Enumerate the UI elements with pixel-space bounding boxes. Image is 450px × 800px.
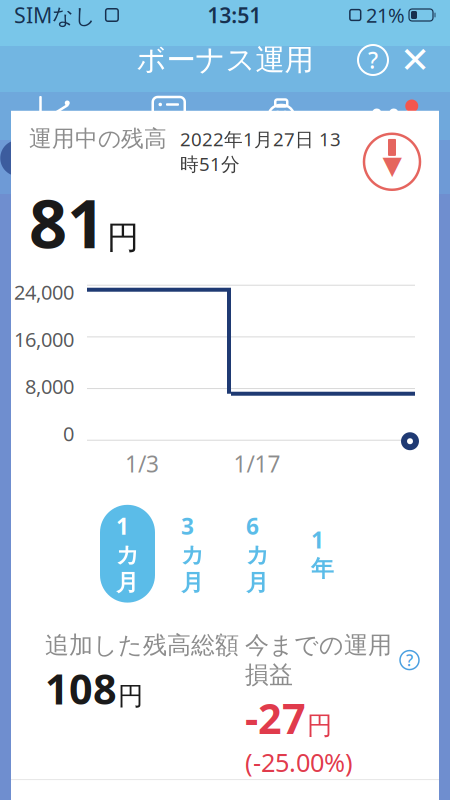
staticText: ✕ xyxy=(400,40,430,80)
button[interactable]: 閉じる xyxy=(394,39,436,81)
staticText: (-25.00%) xyxy=(245,745,353,779)
staticText: 1/3 xyxy=(125,449,159,479)
staticText: その他 xyxy=(361,145,426,171)
staticText: 108 xyxy=(45,661,117,716)
staticText: 円 xyxy=(307,710,332,741)
staticText: ? xyxy=(368,45,378,75)
staticText: ? xyxy=(406,649,413,671)
staticText: 2022年1月27日 13時51分 xyxy=(180,127,341,176)
staticText: ▼ xyxy=(382,151,401,180)
button[interactable]: 1年 xyxy=(290,519,355,589)
staticText: ¥ xyxy=(276,105,286,128)
staticText: 0 xyxy=(63,420,74,447)
button[interactable]: 3カ月 xyxy=(160,505,225,603)
staticText: SIMなし xyxy=(14,1,96,29)
button[interactable]: 運用状況 xyxy=(0,94,112,176)
staticText: 円 xyxy=(107,218,139,257)
staticText: 13:51 xyxy=(207,1,261,29)
staticText: 1年 xyxy=(311,525,334,583)
staticText: 運用する xyxy=(238,145,324,171)
button[interactable]: 1カ月 xyxy=(95,505,160,603)
staticText: -27 xyxy=(245,691,306,745)
staticText: 24,000 xyxy=(14,279,74,305)
staticText: 運用中の残高 xyxy=(29,125,167,153)
staticText: ボーナス運用 xyxy=(136,42,313,78)
button[interactable]: 運用損益の説明 xyxy=(400,651,419,670)
button[interactable]: その他 xyxy=(337,94,450,176)
staticText: 運用履歴 xyxy=(127,145,211,171)
staticText: 円 xyxy=(118,681,143,712)
staticText: 1カ月 xyxy=(116,511,139,597)
staticText: 6カ月 xyxy=(246,511,269,597)
button[interactable]: ¥ xyxy=(225,94,337,176)
staticText: 追加した残高総額 xyxy=(45,631,239,660)
staticText: 21% xyxy=(366,2,405,28)
button[interactable]: 引き出す xyxy=(359,129,425,195)
staticText: 81 xyxy=(29,178,105,267)
staticText: 3カ月 xyxy=(181,511,204,597)
staticText: 運用状況 xyxy=(14,145,98,171)
staticText: 8,000 xyxy=(25,373,74,400)
button[interactable]: 運用履歴 xyxy=(112,94,225,176)
button[interactable]: ヘルプ xyxy=(358,45,388,75)
staticText: 16,000 xyxy=(14,326,74,352)
staticText: 今までの運用損益 xyxy=(245,631,392,690)
button[interactable]: 6カ月 xyxy=(225,505,290,603)
staticText: 1/17 xyxy=(233,449,280,479)
